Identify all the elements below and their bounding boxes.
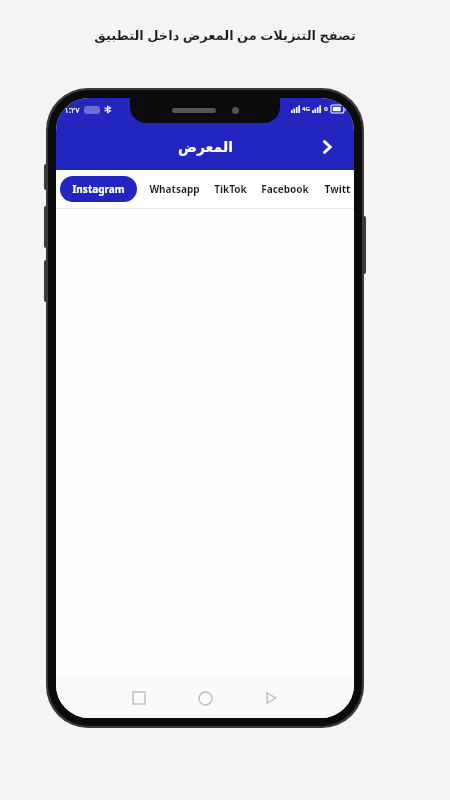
button[interactable]: TikTok <box>212 176 249 202</box>
button[interactable]: Twitter <box>321 176 354 202</box>
button[interactable]: Back <box>310 130 344 164</box>
button[interactable]: Back <box>252 679 290 717</box>
staticText: 0 <box>324 105 328 113</box>
button[interactable]: Facebook <box>259 176 311 202</box>
button[interactable]: Whatsapp <box>147 176 202 202</box>
button[interactable]: Instagram <box>60 176 137 202</box>
staticText: Whatsapp <box>149 182 200 196</box>
staticText: 4G <box>302 105 310 113</box>
button[interactable]: Home <box>186 679 224 717</box>
staticText: المعرض <box>178 139 233 155</box>
staticText: تصفح التنزيلات من المعرض داخل التطبيق <box>94 26 356 44</box>
button[interactable]: Recents <box>120 679 158 717</box>
staticText: Facebook <box>261 182 309 196</box>
staticText: Twitter <box>323 182 352 196</box>
staticText: TikTok <box>214 182 247 196</box>
staticText: ١:٢٧ <box>64 104 80 115</box>
staticText: Instagram <box>72 182 125 196</box>
